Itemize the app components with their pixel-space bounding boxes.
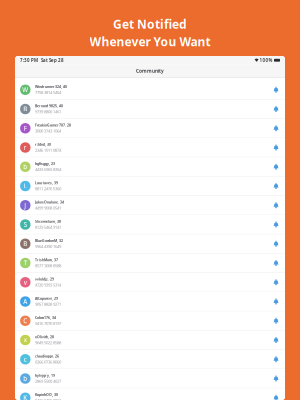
button[interactable]: A [15, 292, 285, 311]
staticText: b [23, 374, 27, 383]
staticText: Bernard 9825, 40 [35, 103, 63, 108]
staticText: 7:30 PM [20, 57, 38, 63]
staticText: bylvjqry, 19 [35, 373, 55, 378]
staticText: Lauriaves, 39 [35, 180, 58, 185]
button[interactable]: W [15, 80, 285, 100]
staticText: r [24, 143, 27, 152]
staticText: Cobra176, 34 [35, 315, 56, 320]
staticText: 9049 5022 8588 [35, 340, 61, 345]
button[interactable]: x [15, 331, 285, 350]
staticText: x [24, 336, 27, 344]
staticText: vvloldjz, 29 [35, 277, 54, 281]
staticText: 8129 5464 9141 [35, 224, 61, 230]
staticText: L [24, 182, 27, 190]
staticText: K [23, 394, 27, 400]
button[interactable]: b [15, 369, 285, 388]
button[interactable]: C [15, 311, 285, 331]
staticText: c [24, 355, 27, 363]
staticText: xOlivith, 28 [35, 334, 54, 339]
button[interactable]: T [15, 254, 285, 273]
staticText: TrishMoro, 37 [35, 257, 58, 262]
staticText: Sat Sep 28 [38, 57, 64, 63]
button[interactable]: r [15, 138, 285, 157]
staticText: T [24, 259, 27, 267]
staticText: 9964 4390 1649 [35, 244, 61, 249]
staticText: 9739 8800 1461 [35, 109, 61, 114]
staticText: BlueGordonM, 32 [35, 238, 63, 243]
staticText: Get Notified [113, 16, 187, 32]
staticText: 4433 6965 8354 [35, 167, 61, 172]
button[interactable]: K [15, 388, 285, 400]
staticText: Community [136, 68, 164, 74]
staticText: 9057 8828 9271 [35, 301, 61, 307]
button[interactable]: J [15, 196, 285, 215]
staticText: r34n4, 30 [35, 142, 51, 147]
staticText: B [23, 105, 27, 113]
button[interactable]: S [15, 215, 285, 234]
button[interactable]: c [15, 350, 285, 369]
staticText: 9416 8455 8012 [35, 398, 61, 400]
staticText: Whenever You Want [89, 33, 210, 50]
staticText: bgfisggy, 23 [35, 161, 55, 166]
button[interactable]: F [15, 119, 285, 138]
staticText: J [24, 201, 26, 209]
staticText: 2346 1011 0874 [35, 147, 61, 153]
staticText: W [22, 86, 28, 94]
staticText: 8577 3008 8588 [35, 263, 61, 268]
staticText: Windrunner324, 40 [35, 84, 67, 89]
staticText: AlCaporevi, 29 [35, 296, 58, 301]
staticText: v [24, 278, 27, 286]
staticText: JaknsOnalone, 34 [35, 200, 64, 204]
staticText: 4720 9393 5314 [35, 282, 61, 288]
button[interactable]: b [15, 157, 285, 177]
staticText: S [24, 220, 27, 229]
staticText: 4499 9008 0541 [35, 205, 61, 211]
button[interactable]: B [15, 100, 285, 119]
staticText: A [23, 297, 27, 306]
staticText: F [24, 124, 27, 132]
staticText: 7758 3814 5454 [35, 90, 61, 95]
staticText: C [23, 317, 27, 325]
staticText: 9416 7070 8197 [35, 321, 61, 326]
button[interactable]: B [15, 234, 285, 254]
staticText: 8811 2476 5360 [35, 186, 61, 191]
staticText: FreakinGamer707, 28 [35, 123, 71, 127]
staticText: Slicemeluen, 38 [35, 219, 61, 224]
button[interactable]: L [15, 177, 285, 196]
button[interactable]: v [15, 273, 285, 292]
staticText: KapinhOO, 30 [35, 392, 58, 397]
staticText: 3000 3743 1064 [35, 128, 61, 134]
staticText: b [23, 163, 27, 171]
staticText: claudioggn, 26 [35, 354, 59, 358]
staticText: 2869 5500 4027 [35, 378, 61, 384]
staticText: 100% [260, 57, 273, 63]
staticText: 0266 0736 8060 [35, 359, 61, 365]
staticText: B [23, 240, 27, 248]
